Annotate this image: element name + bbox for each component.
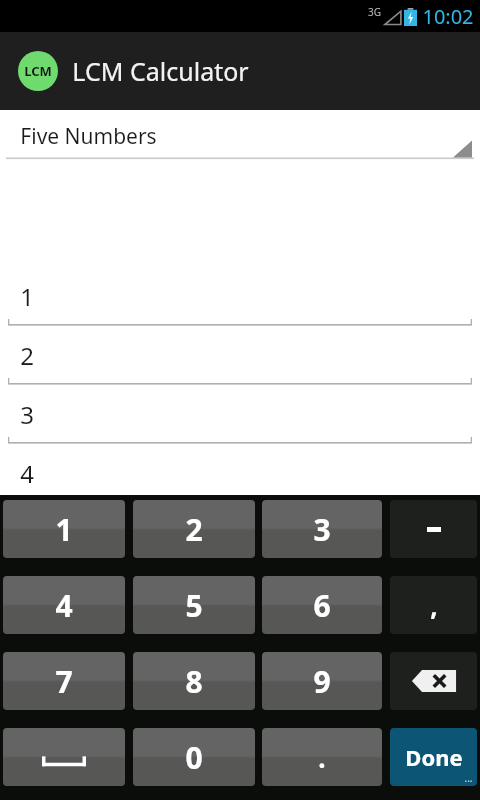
staticText: 2	[185, 509, 203, 550]
staticText: 0	[185, 737, 203, 778]
button[interactable]: 3	[262, 500, 382, 558]
staticText: 8	[185, 661, 203, 702]
staticText: 2	[20, 339, 34, 372]
staticText: 1	[55, 509, 73, 550]
button[interactable]: Done	[390, 728, 477, 786]
button[interactable]: 2	[133, 500, 255, 558]
staticText: Calculate	[193, 588, 288, 618]
button[interactable]: Minus	[390, 500, 477, 558]
button[interactable]: 4	[0, 444, 480, 503]
staticText: 5	[185, 585, 203, 626]
button[interactable]: 5	[0, 503, 480, 562]
staticText: 6	[313, 585, 331, 626]
staticText: ...	[464, 771, 473, 785]
button[interactable]: 2	[0, 326, 480, 385]
staticText: .	[318, 740, 326, 775]
staticText: LCM	[24, 62, 52, 80]
button[interactable]: Backspace	[390, 652, 477, 710]
staticText: 3G	[368, 5, 381, 19]
button[interactable]: 4	[3, 576, 125, 634]
button[interactable]: 1	[3, 500, 125, 558]
staticText: 3	[313, 509, 331, 550]
button[interactable]: Comma	[390, 576, 477, 634]
staticText: 4	[20, 457, 34, 490]
staticText: 1	[20, 280, 34, 313]
staticText: LCM Calculator	[72, 54, 249, 88]
button[interactable]: 5	[133, 576, 255, 634]
button[interactable]: 0	[133, 728, 255, 786]
button[interactable]: Five Numbers	[0, 112, 480, 160]
button[interactable]: Period	[262, 728, 382, 786]
button[interactable]: 7	[3, 652, 125, 710]
staticText: 10:02	[422, 3, 474, 30]
staticText: ,	[430, 588, 438, 623]
staticText: 4	[55, 585, 73, 626]
staticText: Done	[405, 742, 463, 772]
button[interactable]: Calculate	[7, 574, 473, 632]
staticText: 5	[20, 516, 34, 549]
staticText: 7	[55, 661, 73, 702]
button[interactable]: 3	[0, 385, 480, 444]
button[interactable]: 9	[262, 652, 382, 710]
staticText: 3	[20, 398, 34, 431]
staticText: Five Numbers	[20, 122, 157, 151]
button[interactable]: 6	[262, 576, 382, 634]
staticText: 9	[313, 661, 331, 702]
button[interactable]: 1	[0, 267, 480, 326]
button[interactable]: 8	[133, 652, 255, 710]
button[interactable]: Space	[3, 728, 125, 786]
